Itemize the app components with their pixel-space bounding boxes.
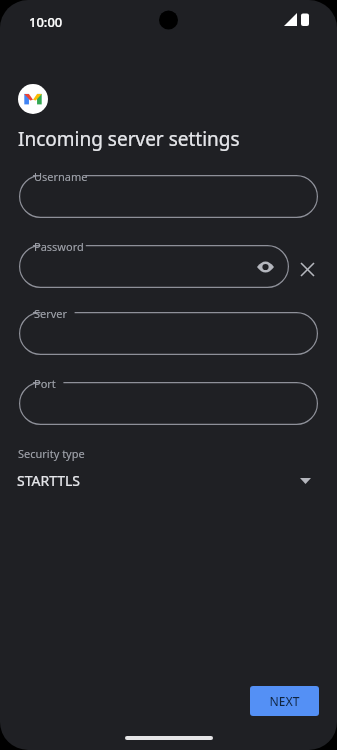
button[interactable]: Server [19, 312, 318, 355]
staticText: 10:00 [29, 13, 63, 31]
button[interactable]: Password [19, 245, 289, 288]
button[interactable]: NEXT [250, 686, 319, 716]
button[interactable]: Show password [252, 254, 278, 280]
staticText: Incoming server settings [18, 126, 240, 152]
staticText: Server [34, 306, 68, 321]
staticText: STARTTLS [17, 471, 81, 490]
staticText: Password [34, 239, 84, 254]
staticText: Username [34, 169, 88, 184]
staticText: Security type [18, 446, 85, 461]
button[interactable]: Username [19, 175, 318, 218]
button[interactable]: Gmail [18, 84, 48, 114]
staticText: NEXT [269, 693, 300, 709]
staticText: Port [34, 376, 56, 391]
button[interactable]: Port [19, 382, 318, 425]
button[interactable]: STARTTLS [0, 466, 337, 498]
button[interactable]: Clear password [294, 256, 320, 282]
